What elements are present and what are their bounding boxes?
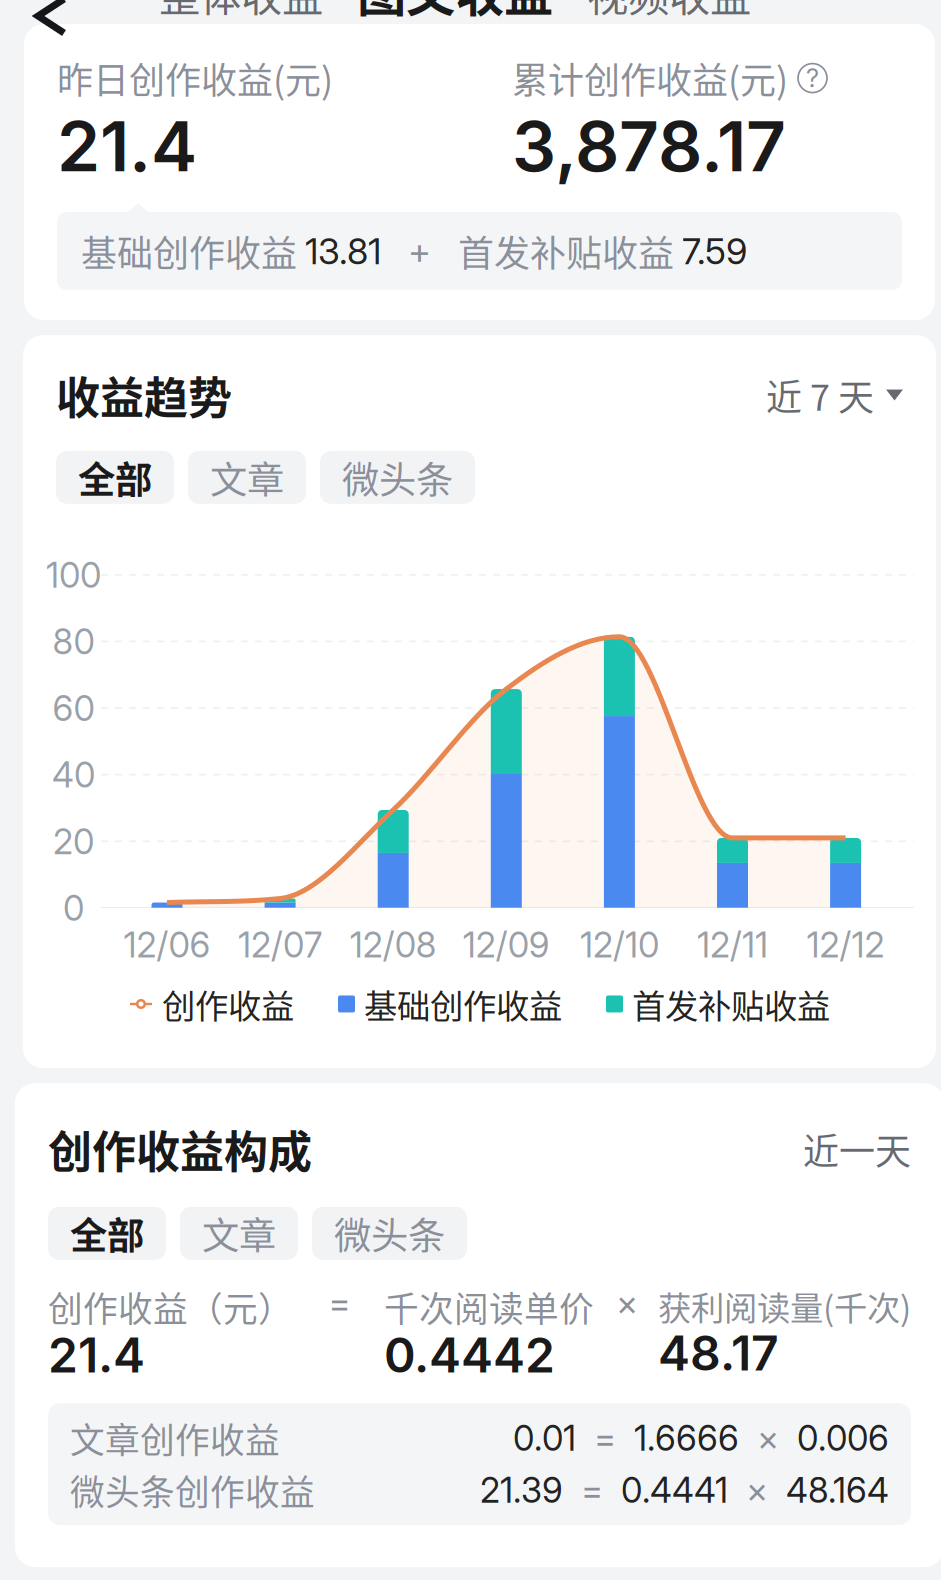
staticText: 基础创作收益	[364, 980, 562, 1028]
button[interactable]: 视频收益	[587, 0, 751, 23]
staticText: 首发补贴收益	[632, 980, 830, 1028]
button[interactable]: 说明	[798, 64, 827, 93]
staticText: 图文收益	[357, 0, 553, 26]
button[interactable]: 全部	[48, 1207, 166, 1260]
staticText: 文章	[210, 450, 284, 504]
staticText: 全部	[78, 450, 152, 504]
staticText: 21.4	[57, 104, 197, 188]
staticText: 0.4442	[384, 1326, 555, 1384]
staticText: 微头条	[342, 450, 453, 504]
staticText: 微头条创作收益	[70, 1465, 315, 1515]
staticText: 21.4	[48, 1326, 145, 1384]
staticText: ×	[616, 1282, 638, 1324]
staticText: 12/10	[580, 924, 659, 966]
staticText: 0.006	[797, 1417, 889, 1459]
staticText: 7.59	[682, 229, 747, 273]
staticText: 100	[46, 554, 101, 596]
button[interactable]: 返回	[18, 0, 84, 43]
staticText: 48.164	[786, 1469, 889, 1511]
staticText: 微头条	[334, 1206, 445, 1260]
staticText: 12/12	[807, 924, 885, 966]
staticText: 20	[53, 821, 94, 862]
staticText: 12/11	[697, 924, 768, 966]
button[interactable]: 全部	[56, 451, 174, 504]
button[interactable]: 近 7 天	[766, 369, 903, 421]
staticText: 12/07	[238, 924, 322, 966]
staticText: 基础创作收益	[81, 225, 305, 277]
staticText: 全部	[70, 1206, 144, 1260]
staticText: +	[381, 229, 458, 273]
staticText: 收益趋势	[56, 363, 232, 427]
button[interactable]: 图文收益	[357, 0, 553, 26]
staticText: 文章创作收益	[70, 1413, 280, 1463]
staticText: 48.17	[658, 1324, 779, 1382]
staticText: 12/06	[123, 924, 210, 966]
staticText: 创作收益（元）	[48, 1282, 293, 1332]
staticText: 近 7 天	[766, 369, 874, 421]
staticText: =	[563, 1469, 621, 1511]
button[interactable]: 文章	[188, 451, 306, 504]
staticText: ×	[728, 1469, 786, 1511]
staticText: 13.81	[305, 229, 381, 273]
staticText: 0.4441	[621, 1469, 728, 1511]
staticText: 获利阅读量(千次)	[658, 1282, 911, 1330]
button[interactable]: 微头条	[320, 451, 475, 504]
staticText: 80	[52, 621, 94, 663]
staticText: 累计创作收益(元)	[512, 52, 788, 104]
staticText: 首发补贴收益	[458, 225, 682, 277]
staticText: ×	[739, 1417, 797, 1459]
button[interactable]: 微头条	[312, 1207, 467, 1260]
staticText: 千次阅读单价	[384, 1282, 594, 1332]
staticText: 21.39	[480, 1469, 563, 1511]
staticText: 1.6666	[634, 1417, 739, 1459]
button[interactable]: 文章	[180, 1207, 298, 1260]
staticText: 0	[63, 887, 84, 929]
staticText: 整体收益	[159, 0, 323, 23]
staticText: =	[328, 1282, 350, 1324]
staticText: =	[576, 1417, 634, 1459]
staticText: 创作收益构成	[48, 1117, 312, 1181]
staticText: 文章	[202, 1206, 276, 1260]
staticText: ?	[806, 63, 819, 93]
staticText: 60	[52, 687, 94, 729]
staticText: 近一天	[803, 1123, 911, 1175]
staticText: 12/08	[350, 924, 437, 966]
staticText: 视频收益	[587, 0, 751, 23]
staticText: 40	[52, 754, 95, 796]
staticText: 创作收益	[162, 980, 294, 1028]
staticText: 0.01	[513, 1417, 576, 1459]
staticText: 12/09	[463, 924, 550, 966]
staticText: 3,878.17	[512, 104, 786, 188]
staticText: 昨日创作收益(元)	[57, 52, 333, 104]
button[interactable]: 整体收益	[159, 0, 323, 23]
